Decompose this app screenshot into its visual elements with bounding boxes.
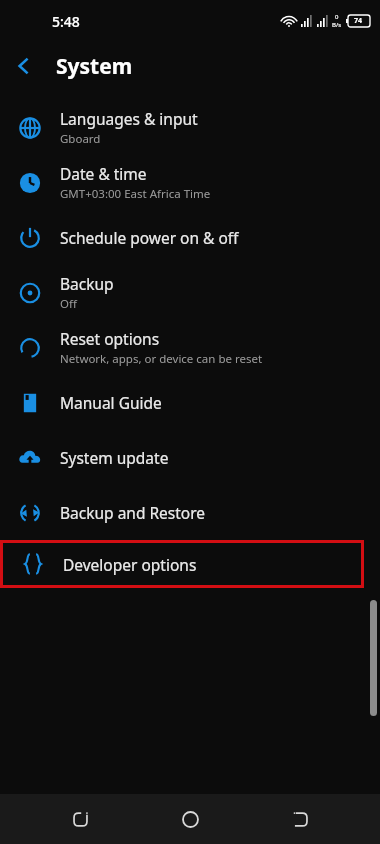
button[interactable]: Developer options <box>3 543 361 585</box>
staticText: 5:48 <box>52 12 80 31</box>
staticText: Schedule power on & off <box>60 227 239 248</box>
button[interactable]: Backup <box>0 265 380 320</box>
staticText: Backup <box>60 273 114 294</box>
staticText: Backup and Restore <box>60 502 206 523</box>
staticText: Manual Guide <box>60 392 162 413</box>
button[interactable]: Back <box>270 794 330 844</box>
staticText: 0 <box>335 13 339 21</box>
button[interactable]: Home <box>160 794 220 844</box>
staticText: Off <box>60 296 77 312</box>
staticText: Reset options <box>60 328 160 349</box>
button[interactable]: Date & time <box>0 155 380 210</box>
button[interactable]: Manual Guide <box>0 375 380 430</box>
staticText: System update <box>60 447 169 468</box>
button[interactable]: Reset options <box>0 320 380 375</box>
staticText: Gboard <box>60 131 101 147</box>
button[interactable]: Schedule power on & off <box>0 210 380 265</box>
staticText: Network, apps, or device can be reset <box>60 351 263 367</box>
button[interactable]: Recent apps <box>50 794 110 844</box>
staticText: Developer options <box>63 554 197 575</box>
staticText: B/s <box>332 21 342 29</box>
staticText: GMT+03:00 East Africa Time <box>60 186 211 202</box>
button[interactable]: System update <box>0 430 380 485</box>
button[interactable]: Back <box>0 42 48 90</box>
staticText: 74 <box>354 16 363 26</box>
staticText: System <box>56 52 133 81</box>
button[interactable]: Languages & input <box>0 100 380 155</box>
staticText: Date & time <box>60 163 147 184</box>
button[interactable]: Backup and Restore <box>0 485 380 540</box>
staticText: Languages & input <box>60 108 198 129</box>
